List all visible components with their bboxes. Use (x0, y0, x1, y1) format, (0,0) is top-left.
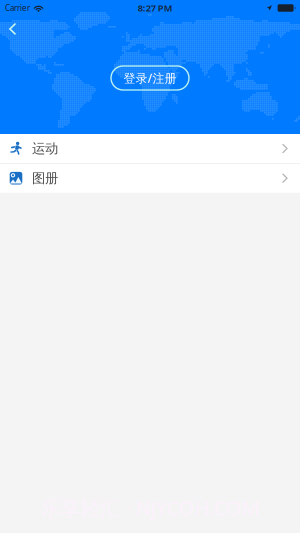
staticText: 运动 (32, 140, 58, 157)
staticText: 8:27 PM (138, 2, 173, 14)
button[interactable]: Back (0, 17, 27, 41)
button[interactable]: 运动 (0, 134, 300, 163)
staticText: 图册 (32, 170, 58, 186)
staticText: Carrier (5, 3, 30, 13)
button[interactable]: 登录/注册 (111, 66, 189, 90)
staticText: 登录/注册 (123, 70, 176, 86)
button[interactable]: 图册 (0, 164, 300, 193)
